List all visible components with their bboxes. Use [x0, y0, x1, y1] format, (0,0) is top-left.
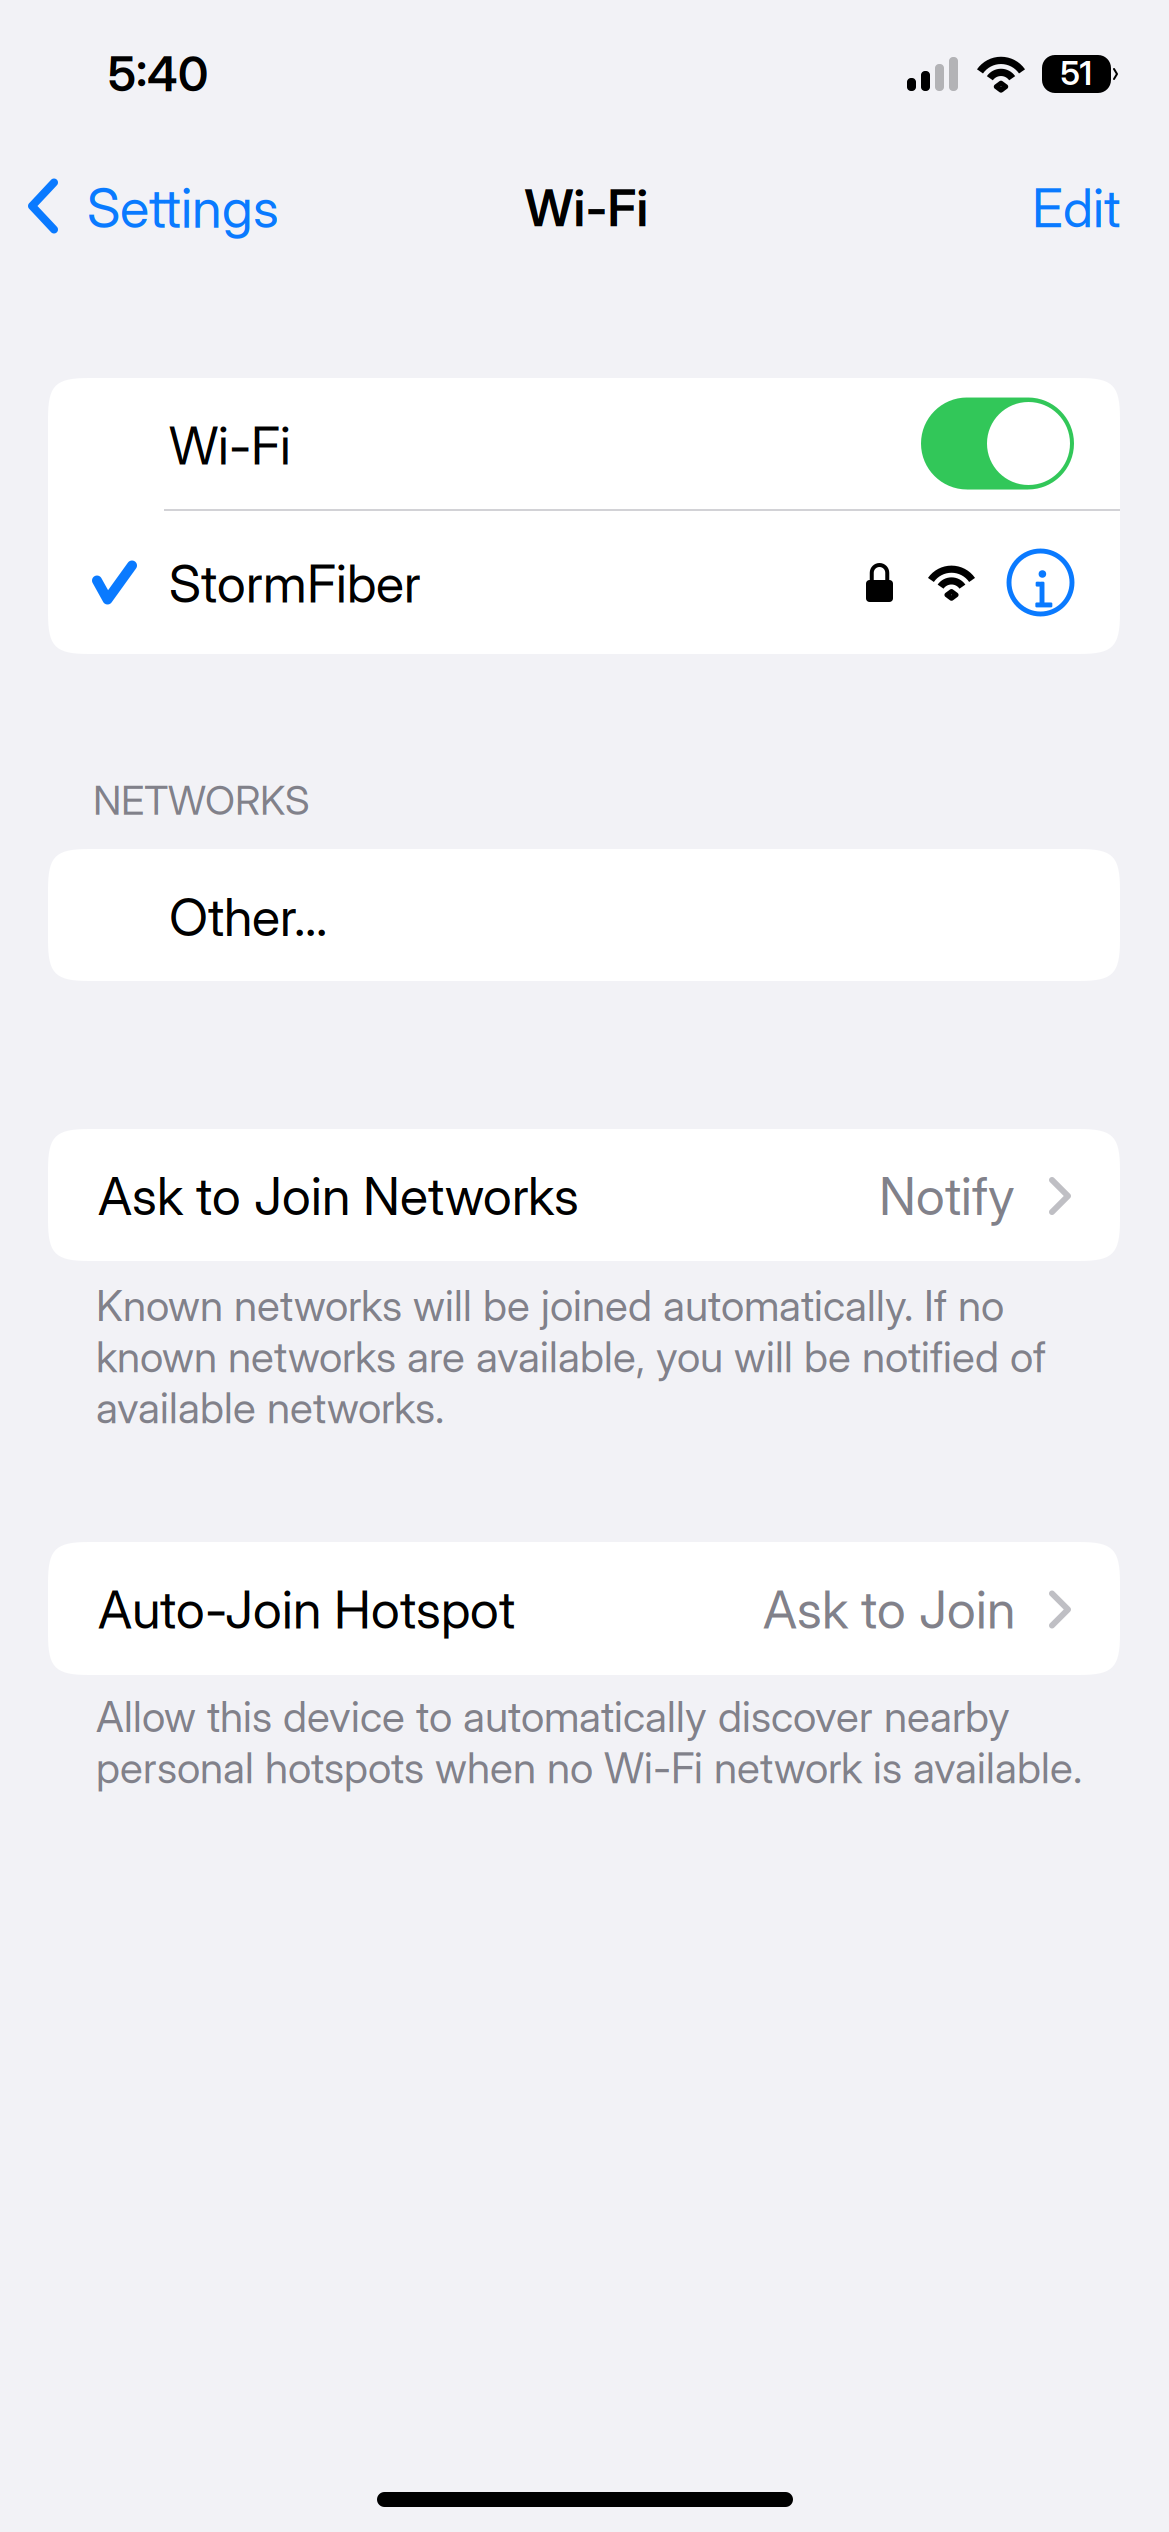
button[interactable]: Wi-Fi — [48, 378, 1120, 509]
staticText: Allow this device to automatically disco… — [96, 1691, 1082, 1793]
staticText: 51 — [1060, 53, 1092, 93]
staticText: Wi-Fi — [524, 178, 648, 238]
staticText: Settings — [87, 175, 279, 241]
staticText: 5:40 — [108, 45, 208, 103]
button[interactable]: StormFiber — [48, 511, 1120, 654]
staticText: Ask to Join Networks — [98, 1164, 579, 1227]
button[interactable]: Ask to Join Networks — [48, 1129, 1120, 1261]
staticText: Wi-Fi — [169, 414, 291, 477]
button[interactable]: Edit — [1007, 159, 1145, 257]
staticText: Other... — [169, 885, 327, 948]
staticText: Edit — [1032, 176, 1120, 240]
staticText: Notify — [879, 1164, 1015, 1227]
button[interactable]: Settings — [0, 158, 279, 258]
staticText: Ask to Join — [763, 1578, 1015, 1641]
staticText: Known networks will be joined automatica… — [96, 1280, 1046, 1433]
staticText: NETWORKS — [93, 776, 310, 824]
button[interactable]: Other... — [48, 849, 1120, 981]
button[interactable]: Auto-Join Hotspot — [48, 1542, 1120, 1675]
staticText: Auto-Join Hotspot — [98, 1578, 515, 1641]
staticText: StormFiber — [169, 552, 421, 615]
